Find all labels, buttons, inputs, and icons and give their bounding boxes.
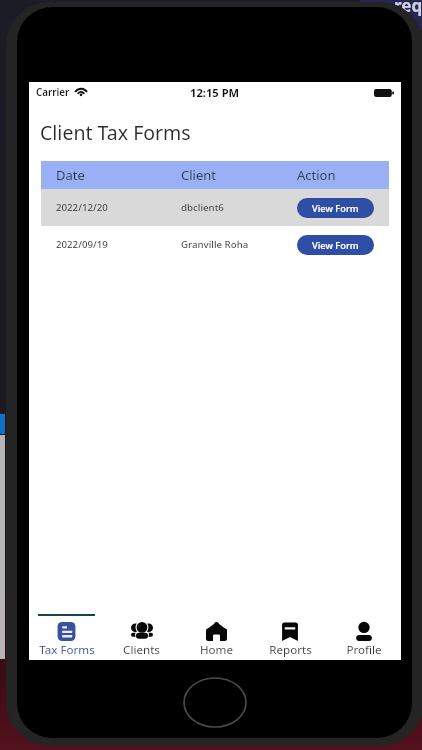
other: Clients [131,622,153,640]
button[interactable]: Tax Forms [29,608,104,660]
staticText: Date [56,166,85,184]
staticText: 2022/12/20 [56,201,108,214]
staticText: Reports [269,642,312,658]
staticText: View Form [312,239,359,252]
staticText: Tax Forms [39,642,95,658]
staticText: View Form [312,202,359,215]
staticText: Carrier [36,86,70,99]
other: Tax Forms [57,622,76,641]
staticText: Profile [346,642,382,658]
staticText: 12:15 PM [190,85,240,100]
other: Reports [281,622,299,641]
staticText: Granville Roha [181,238,249,251]
staticText: Home [200,642,233,658]
staticText: Action [297,166,336,184]
other: Home [206,622,227,641]
other: Profile [355,622,373,641]
staticText: dbclient6 [181,201,224,214]
button[interactable]: Profile [327,608,401,660]
staticText: 2022/09/19 [56,238,108,251]
staticText: Client [181,166,216,184]
button[interactable]: View Form [297,198,374,218]
staticText: Clients [123,642,160,658]
staticText: req [394,0,422,17]
button[interactable]: Home [179,608,253,660]
button[interactable]: Clients [104,608,179,660]
button[interactable]: View Form [297,235,374,255]
staticText: Client Tax Forms [40,119,191,146]
button[interactable]: Reports [253,608,327,660]
